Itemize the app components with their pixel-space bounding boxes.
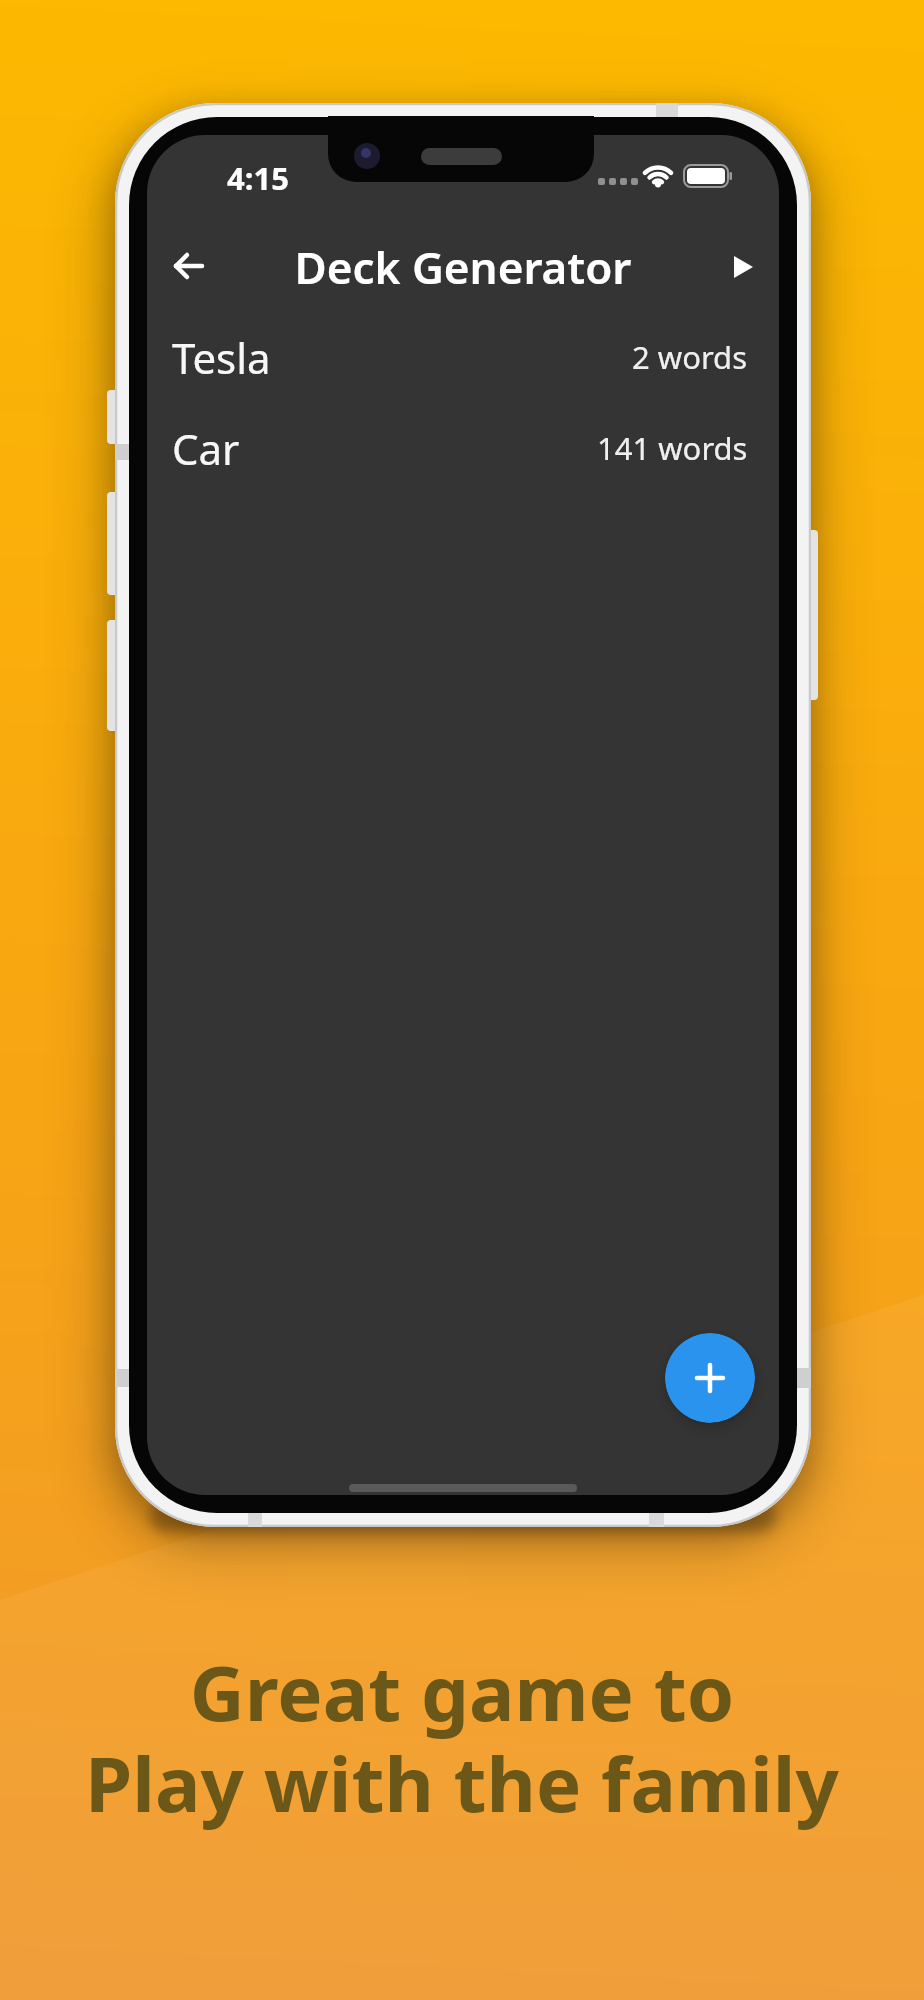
button[interactable] — [161, 243, 217, 289]
staticText: 2 words — [632, 336, 748, 378]
staticText: 141 words — [597, 427, 748, 469]
staticText: Car — [172, 420, 240, 477]
button[interactable] — [723, 249, 763, 285]
staticText: Tesla — [172, 329, 271, 386]
button[interactable]: Tesla — [147, 327, 779, 387]
button[interactable]: Car — [147, 418, 779, 478]
staticText: Great game to Play with the family — [0, 1640, 924, 1834]
staticText: Deck Generator — [147, 237, 779, 297]
staticText: 4:15 — [227, 157, 289, 199]
button[interactable] — [665, 1333, 755, 1423]
